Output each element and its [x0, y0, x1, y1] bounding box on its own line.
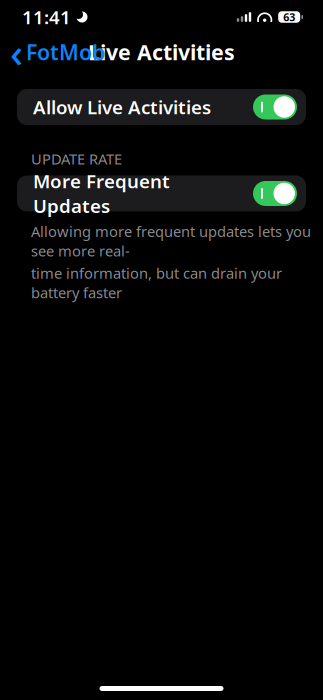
staticText: UPDATE RATE	[31, 149, 122, 168]
button[interactable]: More Frequent Updates	[17, 175, 306, 211]
staticText: Live Activities	[88, 38, 235, 66]
staticText: Allowing more frequent updates lets you …	[31, 221, 311, 260]
staticText: 63	[283, 10, 295, 24]
staticText: time information, but can drain your bat…	[31, 263, 282, 302]
button[interactable]: Allow Live Activities	[17, 89, 306, 125]
staticText: 11:41	[22, 5, 71, 29]
staticText: FotMob	[26, 38, 105, 66]
button[interactable]: ‹	[0, 21, 117, 82]
staticText: More Frequent Updates	[33, 169, 170, 218]
staticText: Allow Live Activities	[33, 95, 211, 119]
staticText: ‹	[10, 25, 23, 78]
